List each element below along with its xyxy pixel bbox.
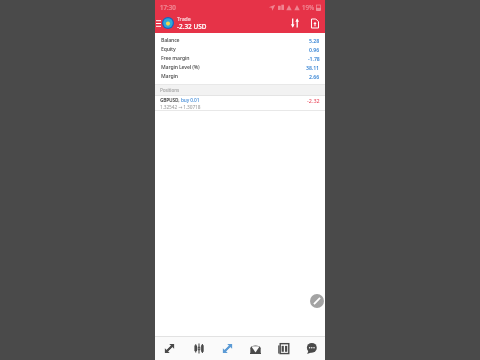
button[interactable]: Chat — [297, 337, 325, 360]
button[interactable]: New order — [305, 13, 325, 33]
staticText: Equity — [161, 46, 176, 53]
button[interactable]: Open menu — [155, 13, 162, 33]
staticText: -1.78 — [308, 55, 320, 62]
button[interactable]: Equity — [155, 45, 325, 54]
staticText: Margin — [161, 73, 178, 80]
button[interactable]: GBPUSD, — [155, 96, 325, 110]
button[interactable]: Quotes — [155, 337, 184, 360]
button[interactable]: Trade — [213, 337, 241, 360]
button[interactable]: History — [241, 337, 269, 360]
staticText: buy 0.01 — [181, 97, 200, 104]
staticText: Positions — [160, 87, 180, 93]
staticText: 5.28 — [309, 37, 320, 44]
button[interactable]: Balance — [155, 36, 325, 45]
staticText: Trade — [177, 15, 191, 22]
staticText: -2.32 — [307, 97, 320, 104]
staticText: 0.96 — [309, 46, 320, 53]
staticText: 17:30 — [160, 3, 176, 11]
button[interactable]: Sort — [284, 13, 305, 33]
staticText: 1.32542 → 1.30718 — [160, 104, 201, 110]
button[interactable]: Free margin — [155, 54, 325, 63]
button[interactable]: Charts — [184, 337, 213, 360]
staticText: 2.66 — [309, 73, 320, 80]
staticText: -2.32 USD — [177, 22, 207, 31]
staticText: GBPUSD, — [160, 97, 181, 104]
staticText: Balance — [161, 37, 180, 44]
staticText: 38.11 — [306, 64, 320, 71]
button[interactable]: Margin — [155, 72, 325, 81]
staticText: 19% — [302, 3, 315, 11]
staticText: Margin Level (%) — [161, 64, 200, 71]
button[interactable]: New order — [310, 294, 324, 308]
button[interactable]: News — [269, 337, 297, 360]
button[interactable]: Margin Level (%) — [155, 63, 325, 72]
staticText: Free margin — [161, 55, 190, 62]
